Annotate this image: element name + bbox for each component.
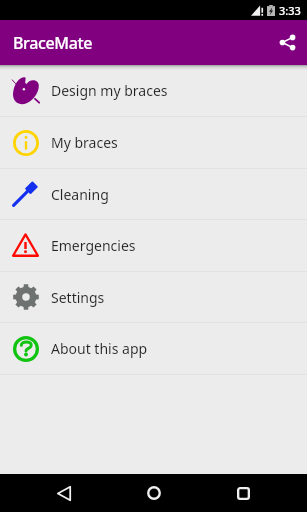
staticText: My braces — [51, 133, 118, 152]
button[interactable]: Settings — [0, 272, 307, 322]
button[interactable]: Home — [131, 474, 177, 512]
staticText: 3:33 — [279, 3, 301, 18]
button[interactable]: Emergencies — [0, 220, 307, 271]
button[interactable]: Design my braces — [0, 65, 307, 116]
button[interactable]: Back — [41, 474, 87, 512]
staticText: Design my braces — [51, 81, 168, 100]
staticText: About this app — [51, 339, 148, 358]
button[interactable]: My braces — [0, 117, 307, 168]
button[interactable]: Cleaning — [0, 169, 307, 219]
staticText: Cleaning — [51, 185, 109, 204]
button[interactable]: Recents — [220, 474, 266, 512]
staticText: Settings — [51, 288, 105, 307]
staticText: BraceMate — [13, 32, 93, 54]
staticText: Emergencies — [51, 236, 136, 255]
button[interactable]: Share — [267, 23, 307, 63]
button[interactable]: About this app — [0, 323, 307, 374]
